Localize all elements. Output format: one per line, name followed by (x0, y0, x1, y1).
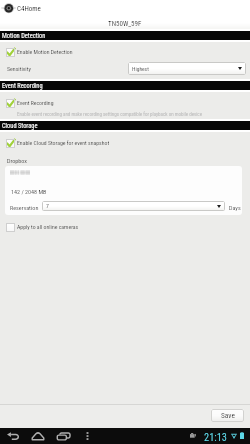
button[interactable]: Recent apps (51, 428, 75, 444)
button[interactable]: More options (79, 428, 96, 444)
button[interactable]: Save (211, 409, 244, 422)
staticText: 21:13 (204, 431, 227, 443)
staticText: Event Recording (17, 100, 54, 107)
button[interactable]: Enable Motion Detection (0, 47, 250, 57)
staticText: Save (221, 411, 235, 420)
staticText: Reservation (10, 204, 39, 211)
button[interactable]: Apply to all online cameras (0, 222, 250, 232)
staticText: Enable event recording and make recordin… (17, 111, 203, 117)
staticText: Event Recording (2, 82, 43, 90)
staticText: Motion Detection (2, 32, 46, 40)
button[interactable]: Highest (128, 62, 246, 75)
staticText: Enable Motion Detection (17, 49, 73, 56)
staticText: 142 / 2048 MB (11, 188, 47, 195)
staticText: C4Home (17, 5, 41, 13)
button[interactable]: 7 (42, 201, 225, 211)
button[interactable]: Event Recording (0, 98, 250, 108)
staticText: Highest (132, 66, 149, 72)
staticText: Sensitivity (7, 66, 31, 73)
staticText: TN50W_59F (108, 20, 142, 28)
staticText: Apply to all online cameras (17, 224, 79, 231)
staticText: Dropbox (7, 157, 28, 164)
button[interactable]: Home (26, 428, 50, 444)
staticText: 7 (46, 203, 49, 210)
button[interactable]: Back (1, 428, 25, 444)
button[interactable]: Enable Cloud Storage for event snapshot (0, 138, 250, 148)
staticText: Days (229, 204, 241, 211)
staticText: Enable Cloud Storage for event snapshot (17, 140, 110, 147)
staticText: Cloud Storage (2, 122, 38, 130)
